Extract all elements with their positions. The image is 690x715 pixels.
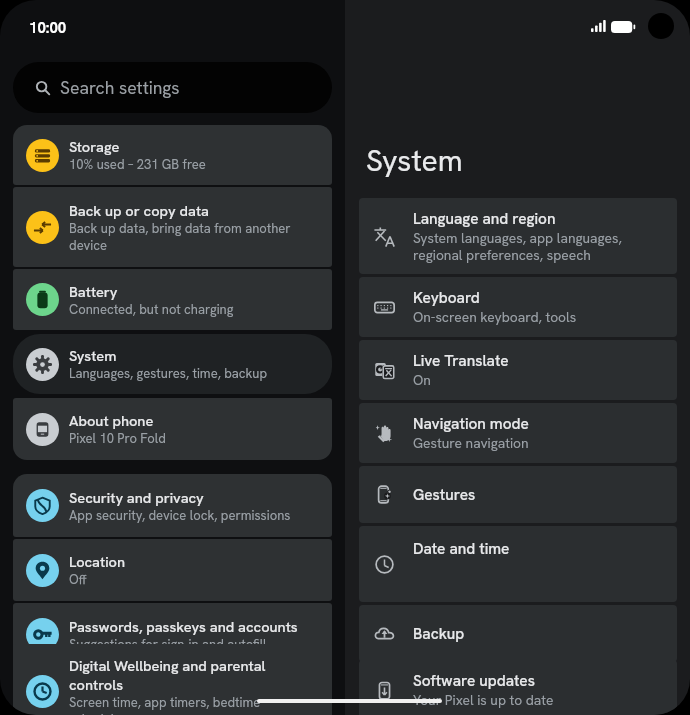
staticText: Connected, but not charging [69,301,234,318]
staticText: Suggestions for sign-in and autofill [69,636,267,653]
staticText: Backup [413,624,465,644]
staticText: Location [69,552,126,571]
staticText: About phone [69,411,154,430]
staticText: Date and time [413,539,510,559]
button[interactable]: Backup [359,605,677,662]
button[interactable]: System [13,334,332,394]
staticText: Security and privacy [69,488,204,507]
button[interactable]: Back up or copy data [13,187,332,267]
button[interactable]: Software updates [359,660,677,715]
button[interactable]: Storage [13,125,332,185]
button[interactable]: Date and time [359,526,677,602]
staticText: Storage [69,137,120,156]
staticText: Software updates [413,671,535,691]
button[interactable]: Keyboard [359,277,677,337]
staticText: Gesture navigation [413,434,529,452]
button[interactable]: Language and region [359,198,677,274]
staticText: Keyboard [413,288,480,308]
button[interactable]: Search settings [13,62,332,113]
staticText: Back up or copy data [69,201,209,220]
button[interactable]: Battery [13,269,332,330]
staticText: Your Pixel is up to date [413,691,554,709]
staticText: Languages, gestures, time, backup [69,365,268,382]
staticText: Navigation mode [413,414,529,434]
button[interactable]: Location [13,539,332,601]
button[interactable]: Navigation mode [359,403,677,463]
staticText: Back up data, bring data from another de… [69,220,321,254]
staticText: System [366,141,463,180]
staticText: Search settings [60,76,180,99]
staticText: On-screen keyboard, tools [413,308,577,326]
staticText: Digital Wellbeing and parental controls [69,656,321,694]
button[interactable]: Digital Wellbeing and parental controls [13,644,332,715]
button[interactable]: Passwords, passkeys and accounts [13,603,332,666]
button[interactable]: Gestures [359,466,677,523]
staticText: Live Translate [413,351,509,371]
staticText: 10:00 [29,18,67,38]
staticText: Pixel 10 Pro Fold [69,430,166,447]
staticText: Battery [69,282,118,301]
staticText: Off [69,571,87,588]
button[interactable]: Live Translate [359,340,677,400]
staticText: System languages, app languages, regiona… [413,229,625,264]
staticText: Screen time, app timers, bedtime schedul… [69,694,321,715]
staticText: App security, device lock, permissions [69,507,291,524]
staticText: Language and region [413,209,556,229]
staticText: Gestures [413,485,476,505]
staticText: 10% used – 231 GB free [69,156,206,173]
staticText: Passwords, passkeys and accounts [69,617,298,636]
staticText: System [69,346,117,365]
button[interactable]: Security and privacy [13,474,332,537]
button[interactable]: About phone [13,398,332,460]
staticText: On [413,371,431,389]
